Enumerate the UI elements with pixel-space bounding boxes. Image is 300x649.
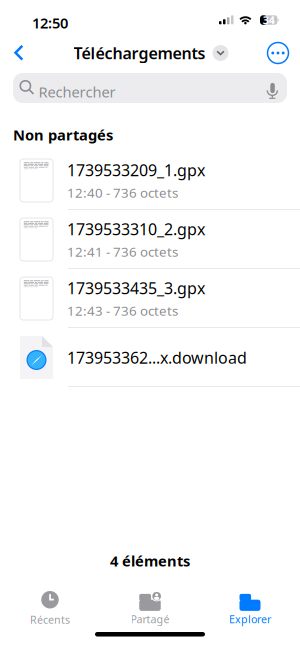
button[interactable]: Explorer [200, 580, 300, 626]
staticText: 1739533209_1.gpx [67, 159, 205, 181]
button[interactable]: 1739533310_2.gpx [0, 210, 300, 269]
button[interactable]: 1739533435_3.gpx [0, 269, 300, 328]
staticText: Téléchargements [73, 42, 205, 64]
staticText: 12:50 [32, 13, 68, 32]
button[interactable]: 1739533209_1.gpx [0, 151, 300, 210]
staticText: 12:43 - 736 octets [67, 302, 178, 319]
staticText: 1739533435_3.gpx [67, 277, 205, 299]
staticText: 4 éléments [110, 551, 190, 570]
staticText: 12:41 - 736 octets [67, 243, 178, 260]
staticText: 173953362...x.download [67, 347, 247, 368]
staticText: Partagé [130, 612, 169, 626]
button[interactable]: 173953362...x.download [0, 328, 300, 387]
button[interactable]: Back [2, 36, 36, 70]
button[interactable]: Folder options [210, 43, 230, 63]
staticText: 34 [263, 13, 275, 27]
button[interactable]: More [262, 36, 294, 70]
button[interactable]: Partagé [100, 580, 200, 626]
staticText: Récents [30, 612, 70, 627]
staticText: Explorer [229, 612, 271, 626]
staticText: Non partagés [13, 125, 113, 144]
staticText: Rechercher [38, 82, 115, 101]
button[interactable]: Récents [0, 580, 100, 626]
staticText: 1739533310_2.gpx [67, 218, 205, 240]
button[interactable]: Rechercher [13, 73, 287, 103]
staticText: 12:40 - 736 octets [67, 184, 178, 201]
